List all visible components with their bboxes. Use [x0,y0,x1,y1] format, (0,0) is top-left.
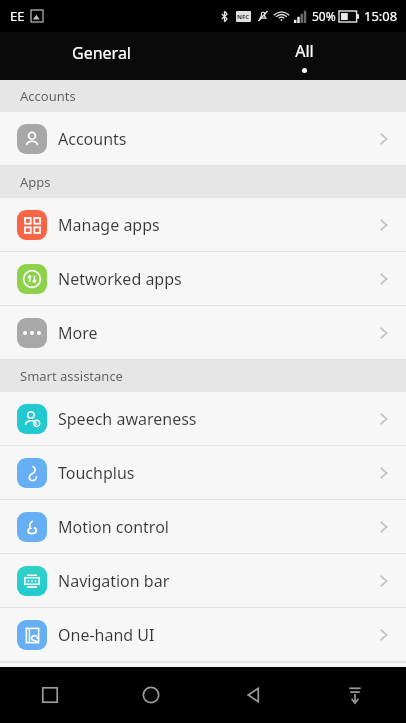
button[interactable]: Back [229,671,277,719]
button[interactable]: Manage apps [0,198,406,251]
staticText: Touchplus [58,462,373,484]
staticText: Speech awareness [58,408,373,430]
button[interactable]: Accounts [0,112,406,165]
staticText: NFC [237,13,250,21]
staticText: Accounts [20,87,76,105]
staticText: General [72,42,131,64]
button[interactable]: All [203,32,406,80]
staticText: EE [10,7,25,25]
button[interactable]: Navigation bar [0,554,406,607]
button[interactable]: One-hand UI [0,608,406,661]
staticText: 50% [312,8,336,24]
staticText: Smart assistance [20,367,123,385]
button[interactable]: General [0,32,203,80]
button[interactable]: Networked apps [0,252,406,305]
button[interactable]: Touchplus [0,446,406,499]
button[interactable]: Speech awareness [0,392,406,445]
button[interactable]: Recent apps [26,671,74,719]
button[interactable]: Motion control [0,500,406,553]
staticText: All [295,40,314,62]
button[interactable]: Hide navigation bar [331,671,379,719]
staticText: More [58,322,373,344]
staticText: Navigation bar [58,570,373,592]
staticText: One-hand UI [58,624,373,646]
staticText: Accounts [58,128,373,150]
staticText: 15:08 [364,7,398,25]
button[interactable]: Home [127,671,175,719]
staticText: Manage apps [58,214,373,236]
staticText: Networked apps [58,268,373,290]
staticText: Motion control [58,516,373,538]
button[interactable]: More [0,306,406,359]
staticText: Apps [20,173,51,191]
